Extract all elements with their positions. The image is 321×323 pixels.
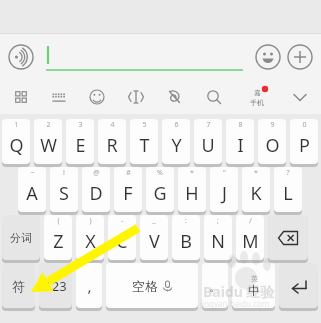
button[interactable]: ": [210, 167, 238, 212]
staticText: ;: [217, 216, 219, 226]
button[interactable]: ;: [204, 215, 232, 260]
staticText: (: [57, 216, 60, 226]
staticText: 1: [14, 120, 19, 130]
button[interactable]: ~: [18, 167, 46, 212]
staticText: 英: [251, 274, 258, 283]
button[interactable]: [279, 263, 318, 308]
button[interactable]: 符: [2, 263, 35, 308]
staticText: 。: [209, 278, 222, 294]
staticText: 8: [238, 120, 243, 130]
button[interactable]: 5: [130, 119, 158, 164]
button[interactable]: -: [108, 215, 136, 260]
staticText: Z: [53, 229, 64, 254]
staticText: 123: [44, 277, 67, 295]
staticText: U: [201, 133, 215, 158]
staticText: A: [26, 181, 38, 206]
staticText: S: [59, 181, 69, 206]
staticText: Baidu 经验: [203, 282, 275, 301]
staticText: V: [149, 229, 160, 254]
button[interactable]: *: [242, 167, 270, 212]
staticText: 4: [110, 120, 115, 130]
staticText: C: [116, 229, 128, 254]
staticText: W: [40, 133, 57, 158]
staticText: ~: [30, 168, 35, 178]
button[interactable]: 嘉: [240, 80, 274, 114]
button[interactable]: #: [114, 167, 142, 212]
staticText: :: [185, 216, 187, 226]
staticText: O: [265, 133, 280, 158]
button[interactable]: [268, 215, 308, 260]
staticText: 9: [270, 120, 275, 130]
button[interactable]: 4: [98, 119, 126, 164]
button[interactable]: 6: [162, 119, 190, 164]
button[interactable]: 3: [66, 119, 94, 164]
staticText: ?: [286, 168, 290, 178]
button[interactable]: 123: [39, 263, 72, 308]
staticText: jingyan.baidu.com: [200, 298, 270, 309]
staticText: 7: [206, 120, 211, 130]
staticText: #: [126, 168, 131, 178]
staticText: M: [242, 229, 259, 254]
button[interactable]: %: [146, 167, 174, 212]
staticText: 嘉: [254, 88, 261, 97]
staticText: *: [254, 168, 258, 178]
staticText: F: [123, 181, 133, 206]
staticText: H: [185, 181, 199, 206]
staticText: T: [139, 133, 150, 158]
button[interactable]: @: [82, 167, 110, 212]
button[interactable]: ): [76, 215, 104, 260]
staticText: 符: [12, 278, 25, 294]
staticText: G: [153, 181, 167, 206]
button[interactable]: 空格: [106, 263, 198, 308]
button[interactable]: 2: [34, 119, 62, 164]
button[interactable]: Emoji: [255, 44, 281, 70]
staticText: J: [222, 181, 227, 206]
button[interactable]: !: [50, 167, 78, 212]
staticText: !: [63, 168, 65, 178]
staticText: _: [152, 216, 156, 226]
button[interactable]: 英: [232, 263, 275, 308]
staticText: /: [249, 216, 252, 226]
staticText: Q: [9, 133, 24, 158]
staticText: L: [283, 181, 293, 206]
button[interactable]: 1: [2, 119, 30, 164]
button[interactable]: *: [178, 167, 206, 212]
button[interactable]: Apps: [8, 84, 34, 110]
button[interactable]: ?: [274, 167, 302, 212]
button[interactable]: /: [236, 215, 264, 260]
staticText: X: [85, 229, 96, 254]
staticText: N: [211, 229, 225, 254]
button[interactable]: 8: [226, 119, 254, 164]
staticText: B: [180, 229, 192, 254]
staticText: K: [250, 181, 262, 206]
staticText: 0: [302, 120, 307, 130]
button[interactable]: 0: [290, 119, 318, 164]
button[interactable]: _: [140, 215, 168, 260]
button[interactable]: Search: [201, 84, 227, 110]
staticText: Y: [171, 133, 182, 158]
staticText: D: [89, 181, 103, 206]
staticText: 2: [46, 120, 51, 130]
staticText: 空格: [132, 278, 158, 294]
button[interactable]: Collapse keyboard: [287, 84, 313, 110]
button[interactable]: 。: [202, 263, 228, 308]
button[interactable]: Attach: [162, 84, 188, 110]
button[interactable]: Keyboard: [46, 84, 72, 110]
button[interactable]: :: [172, 215, 200, 260]
staticText: 中: [248, 283, 260, 298]
button[interactable]: Voice input: [8, 44, 34, 70]
button[interactable]: 9: [258, 119, 286, 164]
button[interactable]: Add: [287, 44, 313, 70]
button[interactable]: [44, 42, 245, 72]
button[interactable]: ,: [76, 263, 102, 308]
button[interactable]: Emoticon: [84, 84, 110, 110]
button[interactable]: 分词: [2, 215, 40, 260]
staticText: 分词: [10, 231, 32, 245]
staticText: @: [93, 168, 100, 178]
button[interactable]: Edit text: [123, 84, 149, 110]
button[interactable]: (: [44, 215, 72, 260]
staticText: ): [89, 216, 92, 226]
staticText: ,: [87, 276, 92, 296]
staticText: 3: [78, 120, 83, 130]
button[interactable]: 7: [194, 119, 222, 164]
